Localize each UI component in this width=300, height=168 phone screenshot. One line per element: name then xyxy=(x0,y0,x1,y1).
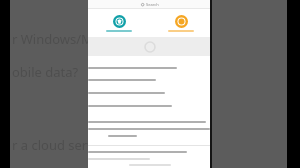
button[interactable] xyxy=(88,151,212,153)
staticText: Search xyxy=(146,2,159,7)
staticText: r Windows/Mac? xyxy=(12,30,113,48)
button[interactable]: Account Security xyxy=(88,15,150,32)
button[interactable]: Search xyxy=(88,0,212,8)
button[interactable] xyxy=(88,128,212,130)
button[interactable]: WeChat Pay Help xyxy=(150,15,212,32)
button[interactable] xyxy=(88,135,212,137)
button[interactable] xyxy=(88,121,212,123)
staticText: r a cloud service? xyxy=(12,136,117,154)
button[interactable] xyxy=(88,67,212,69)
staticText: obile data? xyxy=(12,63,79,81)
button[interactable] xyxy=(88,79,212,81)
button[interactable] xyxy=(88,92,212,94)
button[interactable] xyxy=(88,105,212,107)
